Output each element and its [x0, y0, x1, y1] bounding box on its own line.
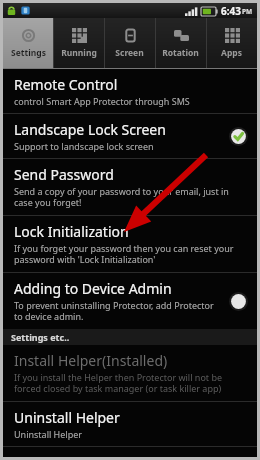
staticText: Adding to Device Admin [14, 279, 172, 298]
staticText: Rotation [162, 47, 199, 59]
staticText: Send Password [14, 165, 114, 184]
staticText: Screen [115, 47, 144, 59]
button[interactable]: Running [53, 18, 104, 69]
button[interactable]: Settings [3, 18, 53, 69]
staticText: Running [61, 47, 97, 59]
staticText: Support to landscape lock screen [14, 140, 154, 152]
button[interactable]: Uninstall Helper [3, 402, 257, 446]
staticText: Send a copy of your password to your ema… [14, 185, 249, 209]
button[interactable]: Send Password [3, 159, 257, 215]
button[interactable]: Apps [206, 18, 257, 69]
staticText: PM [242, 7, 253, 16]
button[interactable]: Install Helper(Installed) [3, 345, 257, 401]
button[interactable]: Remote Control [3, 69, 257, 113]
button[interactable]: Adding to Device Admin [3, 273, 257, 329]
button[interactable]: Lock Initialization [3, 216, 257, 272]
staticText: Settings [11, 47, 46, 59]
staticText: control Smart App Protector through SMS [14, 95, 190, 107]
staticText: Apps [221, 47, 242, 59]
staticText: Landscape Lock Screen [14, 120, 166, 139]
staticText: Uninstall Helper [14, 408, 120, 427]
staticText: If you forget your password then you can… [14, 242, 249, 266]
button[interactable]: Screen [104, 18, 155, 69]
staticText: Uninstall Helper [14, 428, 83, 440]
button[interactable]: Enabled [227, 125, 249, 147]
staticText: Install Helper(Installed) [14, 351, 168, 370]
staticText: Lock Initialization [14, 222, 129, 241]
staticText: If you install the Helper then Protector… [14, 371, 249, 395]
staticText: Settings etc.. [11, 331, 70, 343]
button[interactable]: Rotation [155, 18, 206, 69]
staticText: To prevent uninstalling Protector, add P… [14, 299, 221, 323]
staticText: Remote Control [14, 75, 118, 94]
button[interactable]: Disabled [227, 290, 249, 312]
button[interactable]: Landscape Lock Screen [3, 114, 257, 158]
staticText: 6:43 [221, 4, 241, 18]
